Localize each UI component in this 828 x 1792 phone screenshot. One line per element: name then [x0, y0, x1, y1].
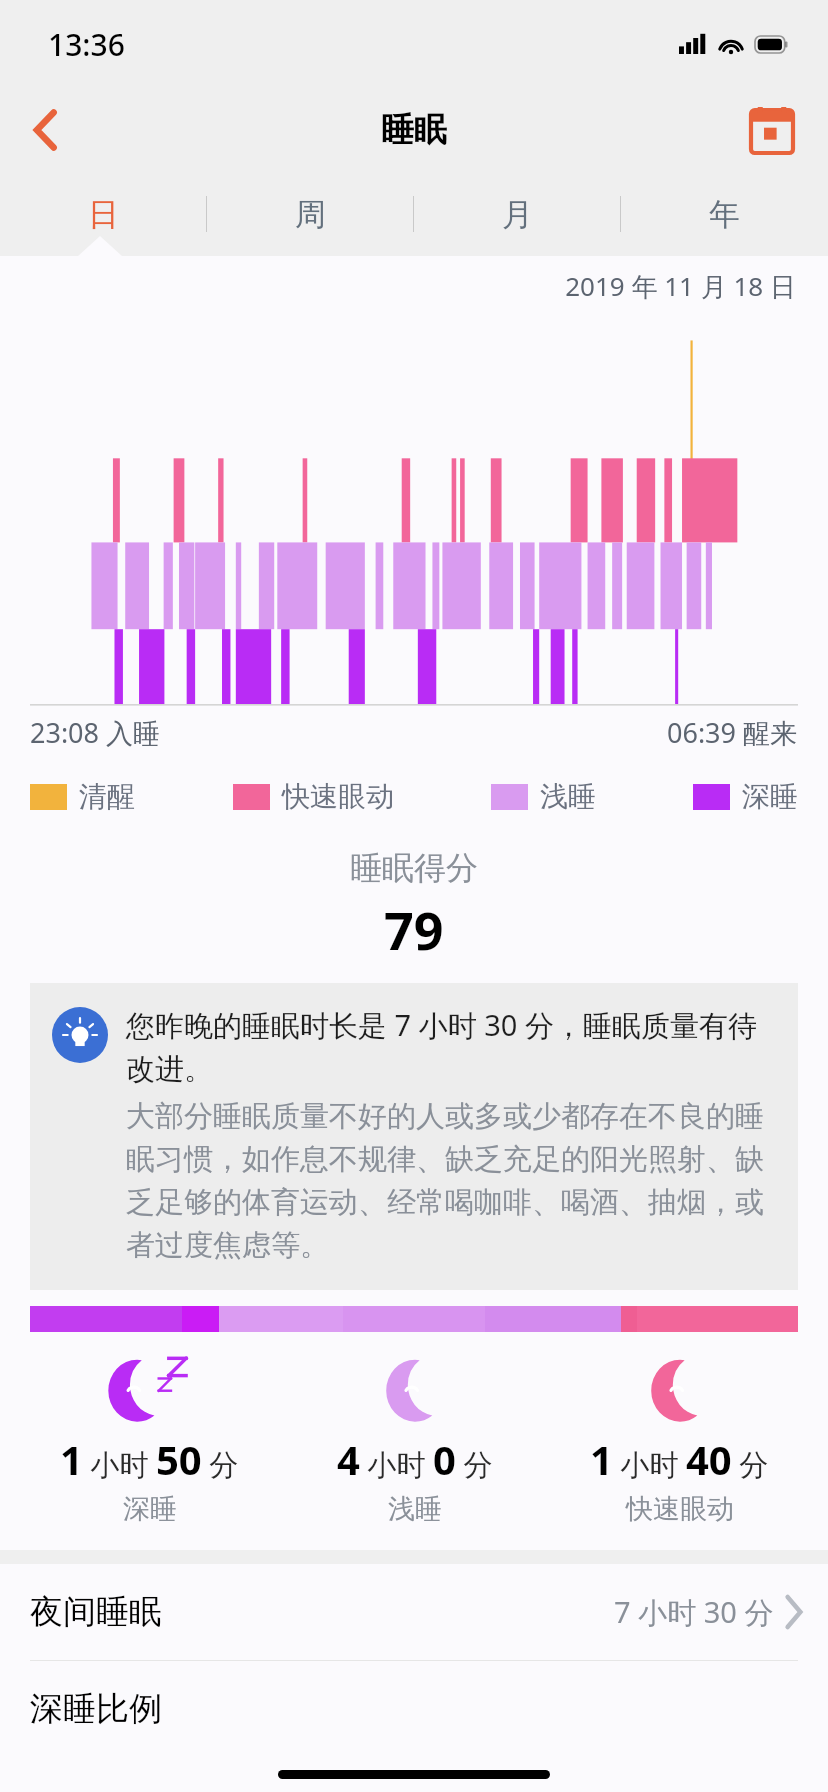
staticText: 7 小时 30 分 — [614, 1592, 774, 1632]
staticText: 周 — [295, 195, 326, 234]
staticText: 睡眠 — [381, 109, 447, 151]
staticText: 快速眼动 — [282, 779, 394, 814]
button[interactable]: Back — [16, 100, 76, 160]
button[interactable]: 日 — [0, 172, 207, 256]
staticText: 年 — [709, 195, 740, 234]
button[interactable]: 月 — [414, 172, 621, 256]
button[interactable]: Calendar — [740, 98, 804, 162]
staticText: 月 — [502, 195, 533, 234]
staticText: 13:36 — [48, 24, 125, 65]
staticText: 1 小时 50 分 — [60, 1432, 239, 1486]
staticText: 快速眼动 — [626, 1492, 734, 1526]
button[interactable]: 深睡比例 — [0, 1661, 828, 1757]
button[interactable]: 年 — [621, 172, 828, 256]
button[interactable]: 夜间睡眠 — [0, 1564, 828, 1660]
staticText: 清醒 — [79, 779, 135, 814]
staticText: 79 — [384, 894, 444, 965]
staticText: 睡眠得分 — [350, 848, 478, 888]
staticText: 大部分睡眠质量不好的人或多或少都存在不良的睡眠习惯，如作息不规律、缺乏充足的阳光… — [126, 1098, 776, 1264]
staticText: 23:08 入睡 — [30, 714, 161, 751]
staticText: 夜间睡眠 — [30, 1591, 162, 1633]
staticText: 浅睡 — [388, 1492, 442, 1526]
staticText: 2019 年 11 月 18 日 — [0, 268, 796, 304]
staticText: 4 小时 0 分 — [337, 1432, 493, 1486]
staticText: 06:39 醒来 — [667, 714, 798, 751]
staticText: 1 小时 40 分 — [590, 1432, 769, 1486]
staticText: 深睡 — [742, 779, 798, 814]
staticText: 日 — [88, 195, 119, 234]
staticText: 您昨晚的睡眠时长是 7 小时 30 分，睡眠质量有待改进。 — [126, 1005, 776, 1088]
button[interactable]: 周 — [207, 172, 414, 256]
button[interactable]: 您昨晚的睡眠时长是 7 小时 30 分，睡眠质量有待改进。 — [52, 1005, 776, 1264]
staticText: 浅睡 — [540, 779, 596, 814]
staticText: 深睡 — [123, 1492, 177, 1526]
staticText: 深睡比例 — [30, 1688, 162, 1730]
